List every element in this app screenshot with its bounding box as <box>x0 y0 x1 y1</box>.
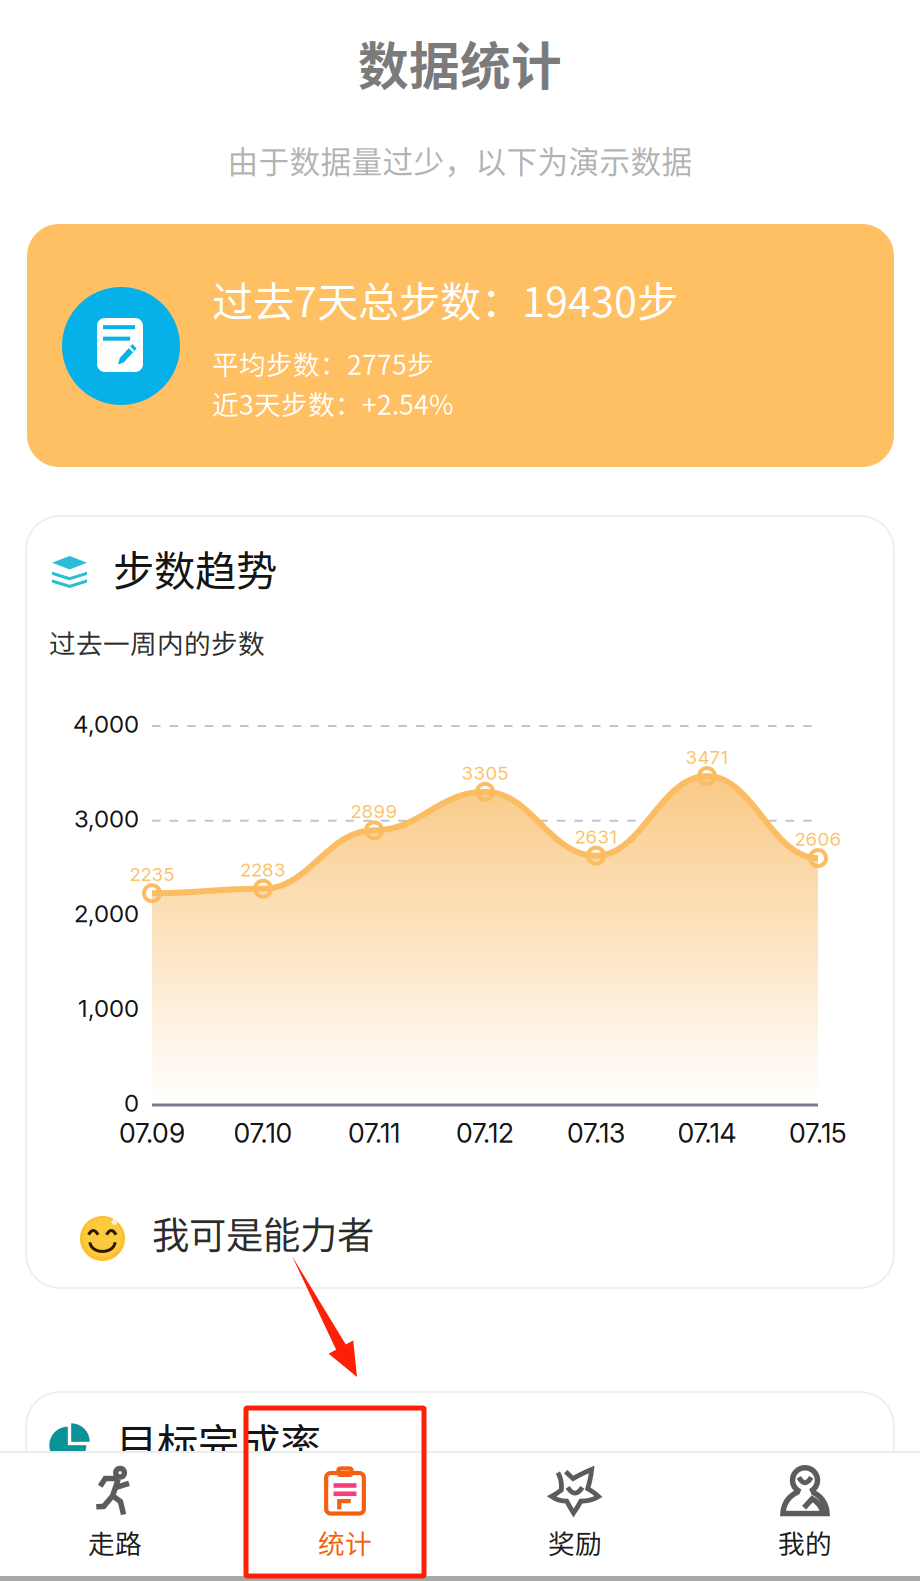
staticText: 数据统计 <box>358 26 562 100</box>
staticText: 步数趋势 <box>113 538 277 598</box>
staticText: 2631 <box>574 825 617 848</box>
button[interactable]: 我的 <box>690 1453 920 1576</box>
staticText: 2606 <box>794 828 841 850</box>
staticText: 07.11 <box>348 1117 400 1149</box>
staticText: 近3天步数：+2.54% <box>212 384 454 422</box>
staticText: 我可是能力者 <box>152 1206 374 1260</box>
staticText: 2283 <box>240 858 286 881</box>
button[interactable]: 奖励 <box>460 1453 690 1576</box>
staticText: 走路 <box>88 1523 142 1561</box>
staticText: 3,000 <box>74 804 139 833</box>
staticText: 统计 <box>318 1523 372 1561</box>
staticText: 07.10 <box>233 1117 292 1149</box>
staticText: 过去一周内的步数 <box>49 623 265 661</box>
staticText: 0 <box>124 1088 139 1117</box>
staticText: 1,000 <box>78 994 139 1023</box>
staticText: 4,000 <box>73 709 139 738</box>
button[interactable]: 走路 <box>0 1453 230 1576</box>
staticText: 3305 <box>461 762 508 784</box>
staticText: 07.15 <box>789 1117 847 1149</box>
staticText: 3471 <box>685 746 728 768</box>
staticText: 平均步数：2775步 <box>212 344 434 382</box>
staticText: 2,000 <box>74 899 139 928</box>
staticText: 07.13 <box>567 1117 625 1149</box>
staticText: 2235 <box>129 863 174 885</box>
staticText: 07.12 <box>456 1117 514 1149</box>
staticText: 07.09 <box>119 1117 185 1149</box>
staticText: 07.14 <box>677 1117 736 1149</box>
button[interactable]: 统计 <box>230 1453 460 1576</box>
staticText: 过去7天总步数：19430步 <box>212 269 678 329</box>
staticText: 2899 <box>350 800 397 823</box>
staticText: 我的 <box>778 1523 832 1561</box>
staticText: 由于数据量过少，以下为演示数据 <box>227 138 692 182</box>
staticText: 目标完成率 <box>116 1411 321 1471</box>
staticText: 奖励 <box>548 1523 602 1561</box>
